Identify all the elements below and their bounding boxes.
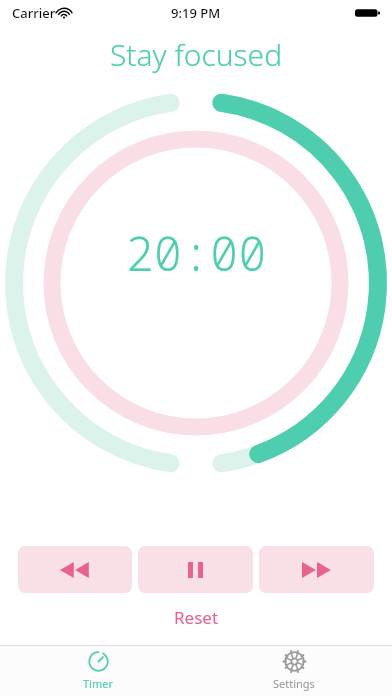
button[interactable]: Reset [164, 604, 229, 631]
staticText: Carrier [12, 4, 56, 22]
staticText: Settings [273, 676, 315, 691]
button[interactable]: Rewind [18, 546, 132, 593]
staticText: 9:19 PM [171, 4, 221, 22]
staticText: Stay focused [0, 34, 392, 75]
button[interactable]: Forward [259, 546, 374, 593]
button[interactable]: Settings [196, 646, 392, 696]
staticText: Timer [83, 676, 113, 691]
staticText: 20:00 [0, 221, 392, 285]
staticText: Reset [174, 606, 219, 629]
button[interactable]: Pause [138, 546, 253, 593]
button[interactable]: Timer [0, 646, 196, 696]
